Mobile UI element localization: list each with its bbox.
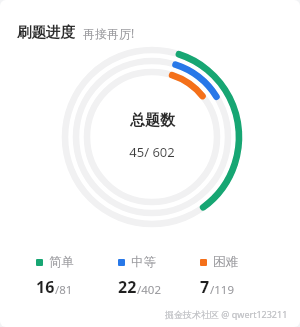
button[interactable]: 中等 bbox=[118, 253, 200, 299]
other: Question progress chart bbox=[59, 44, 245, 230]
staticText: 掘金技术社区 @ qwert123211 bbox=[165, 308, 288, 320]
staticText: 45/ 602 bbox=[129, 143, 175, 161]
staticText: 7 bbox=[200, 276, 210, 298]
staticText: 再接再厉! bbox=[83, 25, 135, 41]
staticText: 16 bbox=[36, 276, 55, 298]
staticText: /402 bbox=[137, 282, 162, 298]
staticText: 总题数 bbox=[130, 111, 175, 130]
staticText: 简单 bbox=[49, 254, 74, 270]
staticText: 22 bbox=[118, 276, 137, 298]
staticText: /81 bbox=[55, 282, 73, 298]
staticText: 中等 bbox=[131, 254, 156, 270]
button[interactable]: 困难 bbox=[200, 253, 282, 299]
staticText: /119 bbox=[210, 282, 235, 298]
staticText: 刷题进度 bbox=[17, 23, 75, 41]
staticText: 困难 bbox=[213, 254, 238, 270]
button[interactable]: 简单 bbox=[36, 253, 118, 299]
